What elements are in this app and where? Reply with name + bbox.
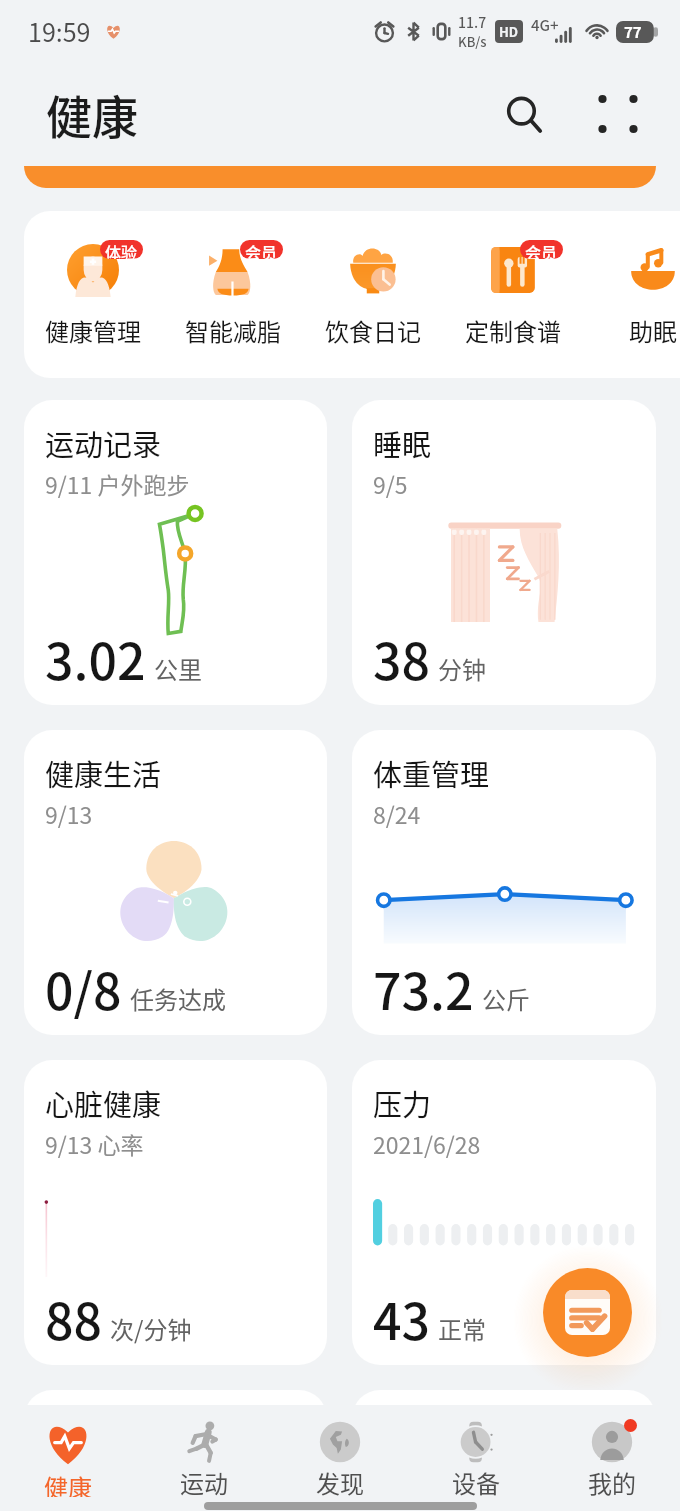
- button[interactable]: 会员: [163, 211, 303, 378]
- staticText: 9/13: [45, 797, 93, 830]
- staticText: 会员: [525, 240, 558, 259]
- staticText: KB/s: [458, 32, 487, 51]
- staticText: 19:59: [28, 13, 91, 49]
- button[interactable]: 体重管理: [352, 730, 656, 1035]
- button[interactable]: Search: [488, 78, 560, 150]
- staticText: 38: [373, 622, 430, 694]
- staticText: 心脏健康: [45, 1082, 162, 1124]
- staticText: 公里: [154, 651, 202, 686]
- button[interactable]: 健康生活: [24, 730, 327, 1035]
- staticText: 健康生活: [45, 752, 162, 794]
- button[interactable]: 体验: [24, 211, 163, 378]
- staticText: 体重管理: [373, 752, 490, 794]
- staticText: 助眠: [629, 313, 677, 348]
- staticText: 运动: [180, 1465, 228, 1497]
- button[interactable]: 健康: [0, 1421, 136, 1497]
- button[interactable]: Banner: [24, 166, 656, 188]
- button[interactable]: 设备: [408, 1421, 544, 1497]
- staticText: 智能减脂: [185, 313, 281, 348]
- staticText: 77: [624, 21, 642, 43]
- staticText: 设备: [452, 1465, 500, 1497]
- button[interactable]: 运动: [136, 1421, 272, 1497]
- staticText: 88: [45, 1282, 102, 1354]
- staticText: 73.2: [373, 952, 474, 1024]
- staticText: 运动记录: [45, 422, 162, 464]
- staticText: 定制食谱: [465, 313, 561, 348]
- button[interactable]: 会员: [443, 211, 583, 378]
- staticText: 健康: [44, 1469, 92, 1497]
- staticText: 0/8: [45, 952, 122, 1024]
- staticText: 压力: [373, 1082, 432, 1124]
- staticText: 体验: [105, 240, 138, 259]
- staticText: 3.02: [45, 622, 146, 694]
- staticText: 4G+: [531, 14, 559, 36]
- button[interactable]: 运动记录: [24, 400, 327, 705]
- staticText: HD: [499, 22, 519, 41]
- staticText: 2021/6/28: [373, 1127, 481, 1160]
- button[interactable]: 睡眠: [352, 400, 656, 705]
- staticText: 43: [373, 1282, 430, 1354]
- staticText: 9/13 心率: [45, 1127, 144, 1160]
- staticText: 次/分钟: [110, 1311, 192, 1346]
- button[interactable]: 我的: [544, 1421, 680, 1497]
- button[interactable]: 发现: [272, 1421, 408, 1497]
- button[interactable]: Add record: [543, 1268, 632, 1357]
- button[interactable]: More options: [582, 78, 654, 150]
- staticText: 会员: [245, 240, 278, 259]
- staticText: 我的: [588, 1465, 636, 1497]
- staticText: 任务达成: [130, 981, 226, 1016]
- staticText: 饮食日记: [325, 313, 421, 348]
- staticText: 公斤: [482, 981, 530, 1016]
- staticText: 8/24: [373, 797, 421, 830]
- button[interactable]: 饮食日记: [303, 211, 443, 378]
- staticText: 9/11 户外跑步: [45, 467, 190, 500]
- button[interactable]: 助眠: [583, 211, 680, 378]
- staticText: 9/5: [373, 467, 408, 500]
- button[interactable]: 心脏健康: [24, 1060, 327, 1365]
- staticText: 健康管理: [45, 313, 141, 348]
- staticText: 正常: [438, 1311, 486, 1346]
- staticText: 健康: [46, 81, 138, 148]
- staticText: 分钟: [438, 651, 486, 686]
- button[interactable]: 压力: [352, 1060, 656, 1365]
- staticText: 发现: [316, 1465, 364, 1497]
- staticText: 11.7: [458, 12, 487, 32]
- staticText: 睡眠: [373, 422, 432, 464]
